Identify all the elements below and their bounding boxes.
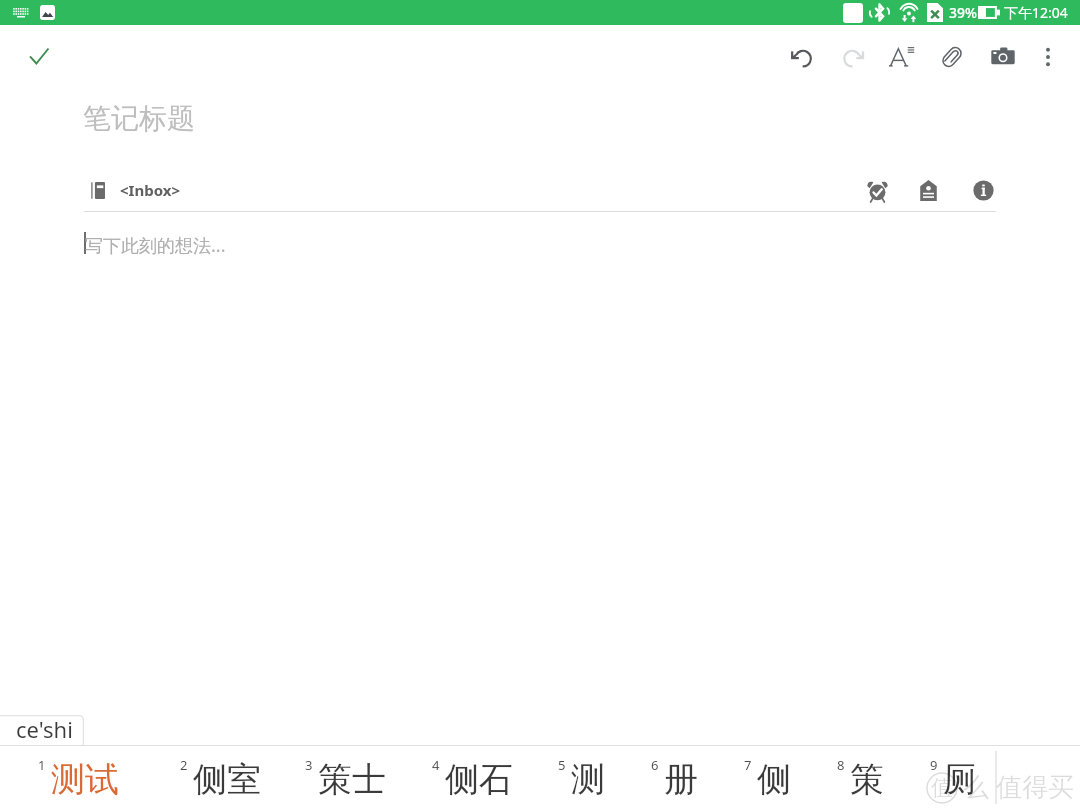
button[interactable]: 7 [724,746,811,810]
staticText: 值 [931,774,953,802]
staticText: 策 [850,758,884,801]
staticText: 笔记标题 [83,101,195,136]
button[interactable]: 4 [412,746,533,810]
staticText: 测试 [51,758,119,801]
button[interactable]: 1 [18,746,139,810]
button[interactable]: 2 [160,746,281,810]
button[interactable]: Keyboard [13,8,29,18]
staticText: 6 [651,756,659,774]
button[interactable]: 5 [538,746,625,810]
button[interactable]: Reminder [857,170,897,210]
staticText: 3 [305,756,313,774]
staticText: 策士 [318,758,386,801]
staticText: 侧室 [193,758,261,801]
staticText: 值得买 [996,771,1074,804]
button[interactable]: More options [1030,39,1066,75]
staticText: 8 [837,756,845,774]
staticText: 测 [571,758,605,801]
button[interactable]: Tags [908,170,948,210]
button[interactable]: Attach [934,39,970,75]
staticText: 册 [664,758,698,801]
staticText: 侧 [757,758,791,801]
staticText: 9 [930,756,938,774]
staticText: <Inbox> [120,180,180,200]
staticText: 侧石 [445,758,513,801]
button[interactable]: 6 [631,746,718,810]
staticText: 下午12:04 [1004,3,1068,22]
button[interactable]: Undo [783,39,819,75]
button[interactable]: 3 [285,746,406,810]
button[interactable]: Redo [832,39,868,75]
button[interactable]: Format text [884,39,920,75]
staticText: 4 [432,756,440,774]
button[interactable]: Done [22,39,56,73]
staticText: 7 [744,756,752,774]
staticText: 1 [38,756,46,774]
staticText: 厕 [943,758,977,801]
staticText: 39% [949,3,977,22]
button[interactable]: <Inbox> [84,166,180,214]
button[interactable]: 8 [817,746,904,810]
staticText: 2 [180,756,188,774]
button[interactable]: Camera [985,39,1021,75]
staticText: 么 [963,771,989,804]
button[interactable]: ce'shi [0,715,84,745]
staticText: ce'shi [16,714,73,744]
button[interactable]: Screenshot [40,5,55,20]
button[interactable]: 9 [910,746,997,810]
staticText: 写下此刻的想法... [85,233,226,258]
button[interactable]: Note info [963,170,1003,210]
staticText: 5 [558,756,566,774]
